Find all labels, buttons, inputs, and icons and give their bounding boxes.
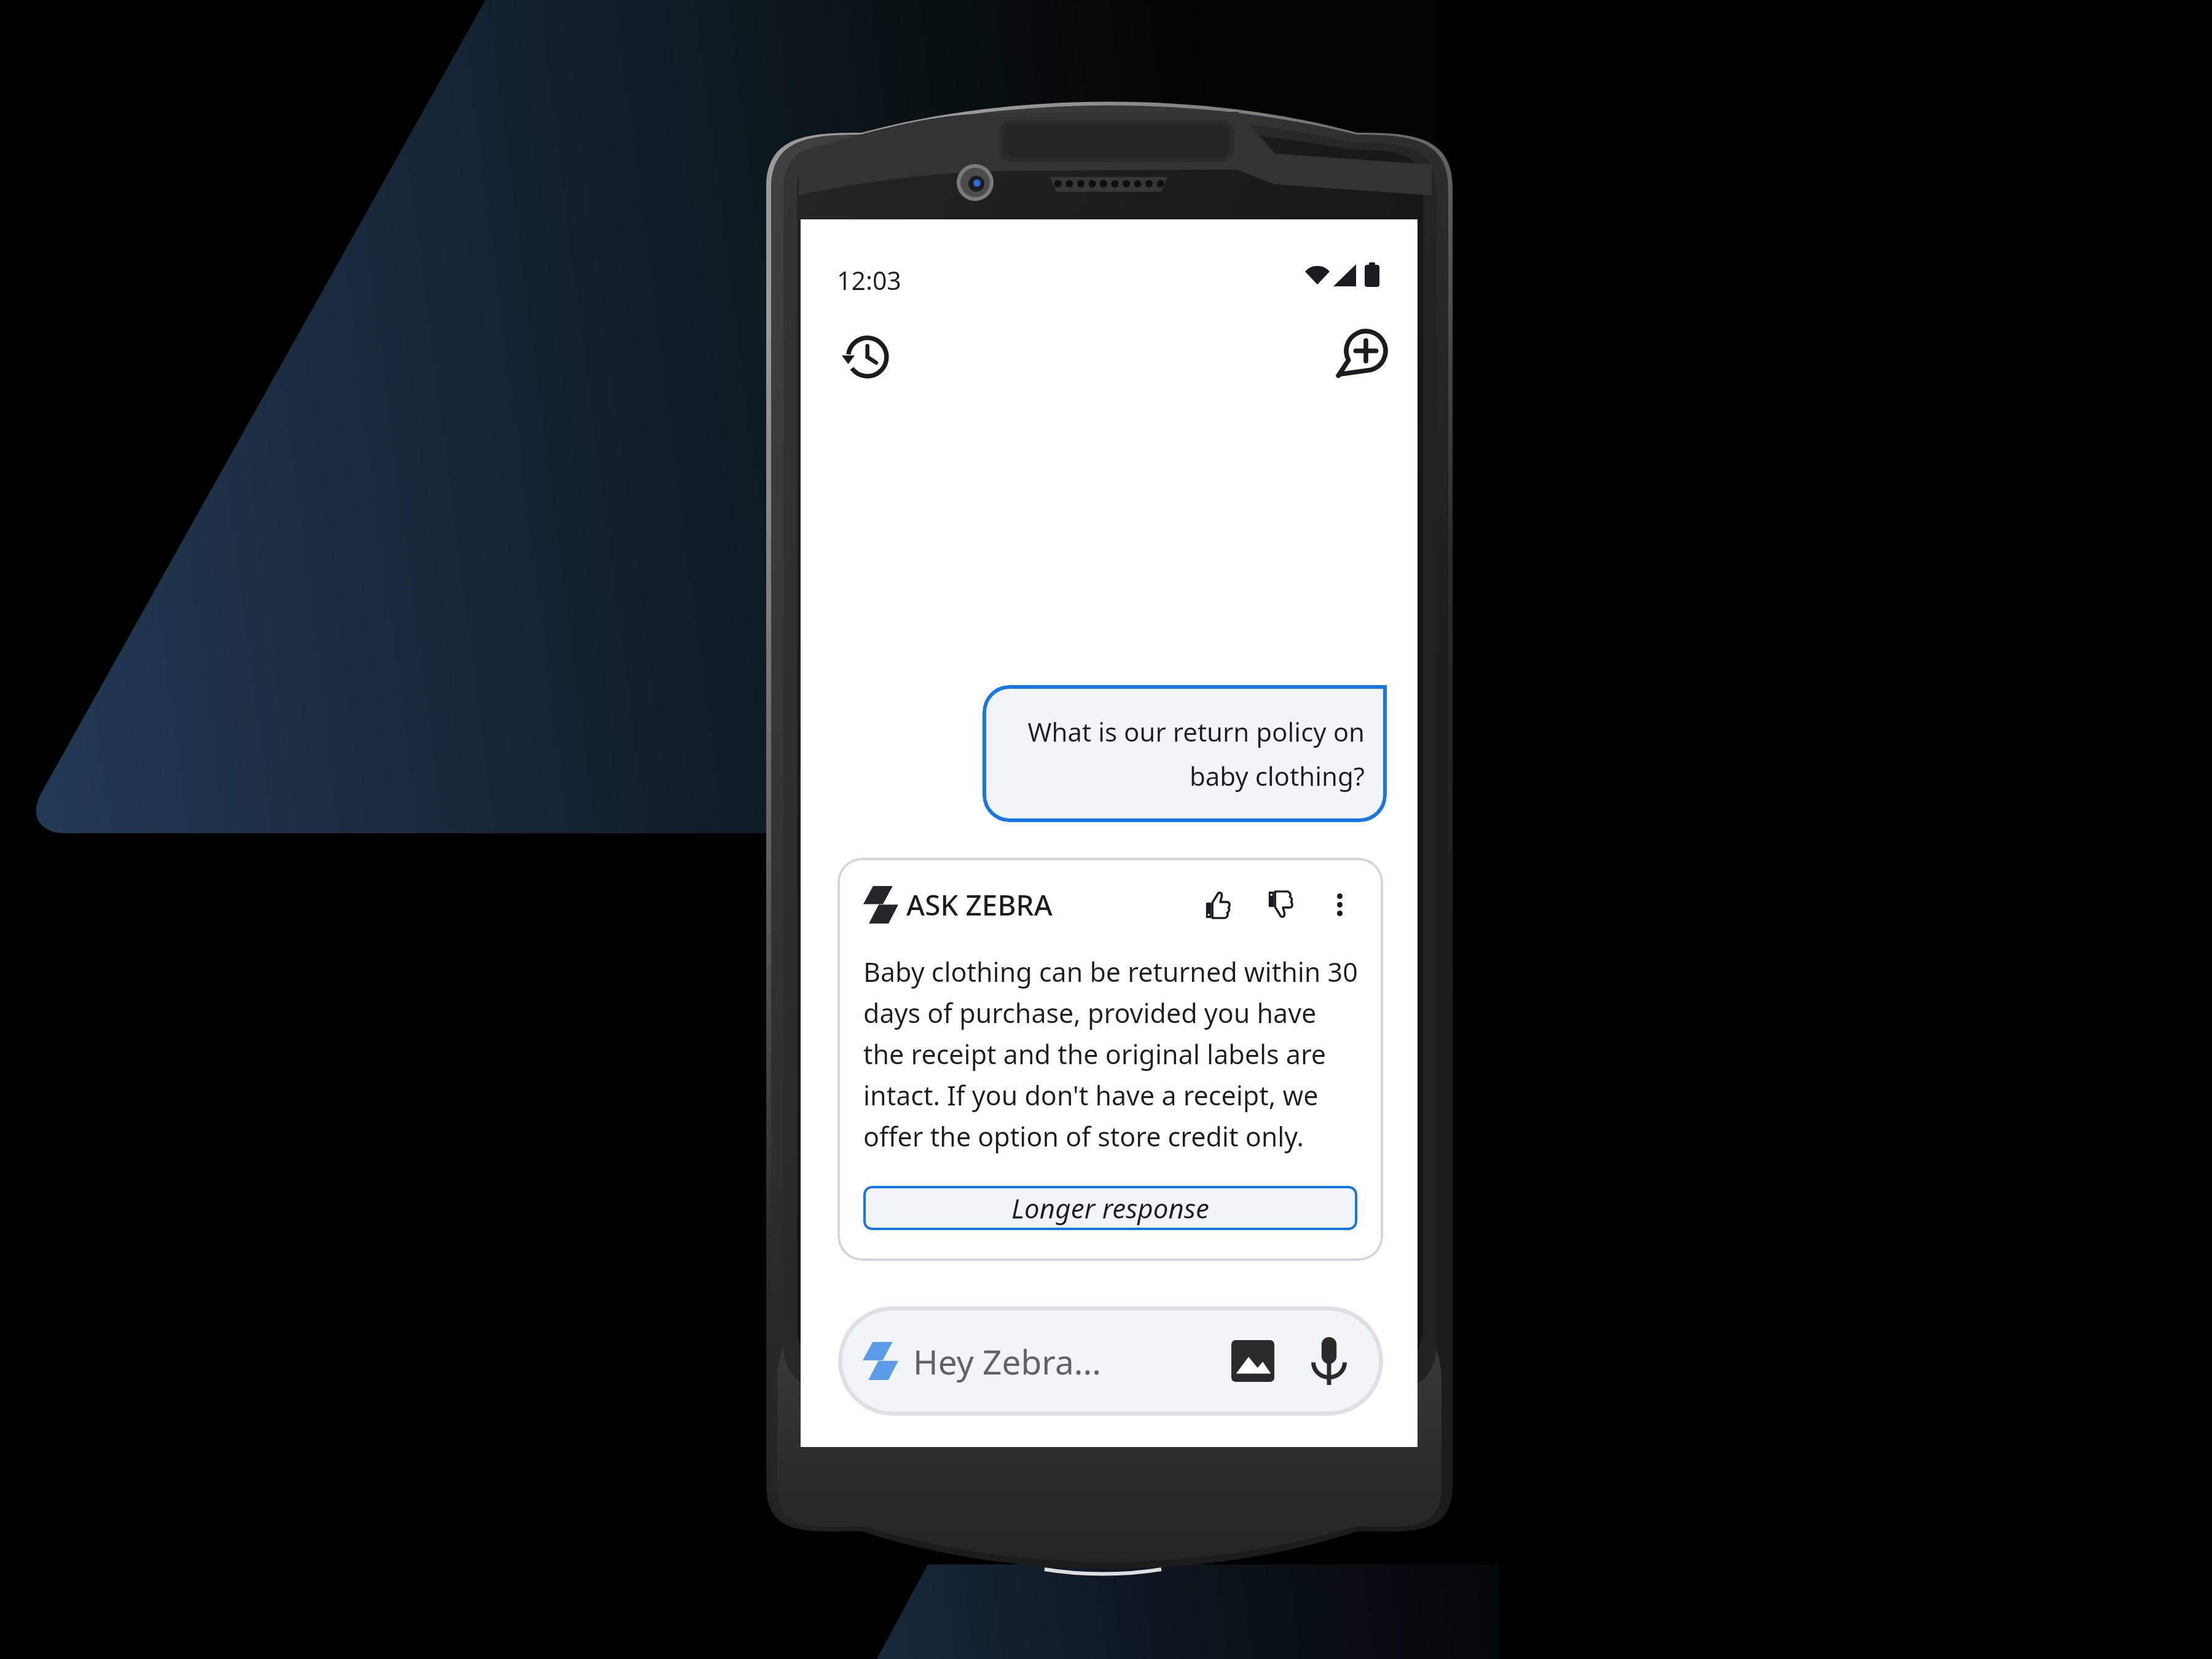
button[interactable]: Attach image xyxy=(1227,1335,1279,1387)
button[interactable]: What is our return policy on baby clothi… xyxy=(982,685,1387,822)
button[interactable]: Voice input xyxy=(1303,1335,1355,1387)
button[interactable]: Thumbs down xyxy=(1261,881,1300,928)
button[interactable]: More options xyxy=(1326,881,1353,928)
button[interactable]: Hey Zebra... xyxy=(838,1306,1383,1416)
button[interactable]: History xyxy=(835,327,894,386)
staticText: 12:03 xyxy=(837,263,901,297)
staticText: ASK ZEBRA xyxy=(906,885,1053,924)
button[interactable]: New chat xyxy=(1333,325,1392,384)
staticText: Baby clothing can be returned within 30 … xyxy=(863,954,1362,1154)
staticText: Hey Zebra... xyxy=(913,1338,1102,1384)
staticText: Longer response xyxy=(1011,1190,1209,1226)
button[interactable]: Thumbs up xyxy=(1198,881,1237,928)
button[interactable]: Longer response xyxy=(863,1186,1357,1230)
staticText: What is our return policy on baby clothi… xyxy=(1005,714,1365,793)
